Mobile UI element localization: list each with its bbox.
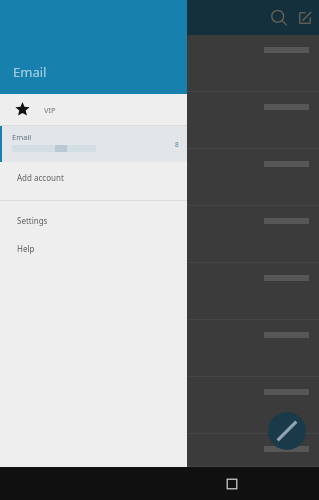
staticText: Email	[13, 63, 47, 81]
button[interactable]: Settings	[0, 206, 187, 234]
button[interactable]	[0, 434, 319, 467]
staticText: 8	[175, 140, 179, 149]
button[interactable]: Add account	[0, 162, 187, 193]
button[interactable]: VIP	[0, 94, 187, 125]
button[interactable]: Recent apps	[218, 470, 246, 498]
button[interactable]	[0, 35, 319, 92]
button[interactable]: Email	[0, 126, 187, 162]
button[interactable]	[0, 320, 319, 377]
button[interactable]	[0, 206, 319, 263]
button[interactable]: Email	[0, 0, 187, 94]
staticText: Add account	[17, 172, 64, 183]
button[interactable]: Help	[0, 234, 187, 262]
button[interactable]	[0, 92, 319, 149]
staticText: Email	[12, 132, 32, 142]
staticText: Help	[17, 243, 35, 254]
button[interactable]	[0, 263, 319, 320]
button[interactable]	[0, 377, 319, 434]
button[interactable]: Search	[268, 7, 290, 29]
button[interactable]: Compose email	[268, 412, 306, 450]
staticText: VIP	[44, 105, 56, 115]
button[interactable]	[0, 149, 319, 206]
button[interactable]: Compose	[294, 7, 316, 29]
staticText: Settings	[17, 215, 48, 226]
